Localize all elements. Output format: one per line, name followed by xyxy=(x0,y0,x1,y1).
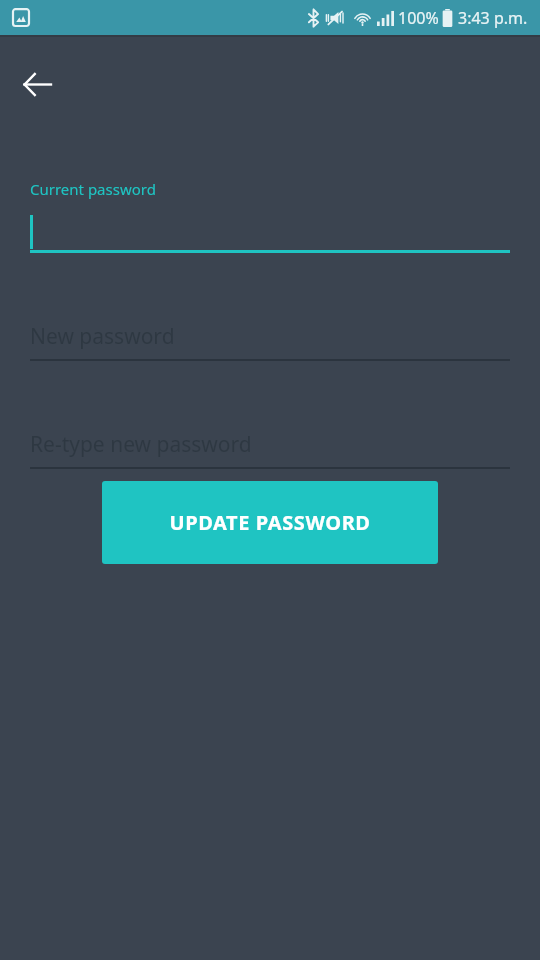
button[interactable]: New password xyxy=(30,317,510,361)
button[interactable]: UPDATE PASSWORD xyxy=(102,481,438,564)
staticText: UPDATE PASSWORD xyxy=(169,509,371,536)
staticText: 3:43 p.m. xyxy=(458,7,528,29)
staticText: Re-type new password xyxy=(30,430,252,459)
button[interactable]: Re-type new password xyxy=(30,425,510,469)
button[interactable]: Back xyxy=(10,57,64,111)
button[interactable]: Current password xyxy=(30,145,510,255)
staticText: Current password xyxy=(30,179,156,199)
staticText: 100% xyxy=(398,7,439,29)
staticText: New password xyxy=(30,322,175,351)
